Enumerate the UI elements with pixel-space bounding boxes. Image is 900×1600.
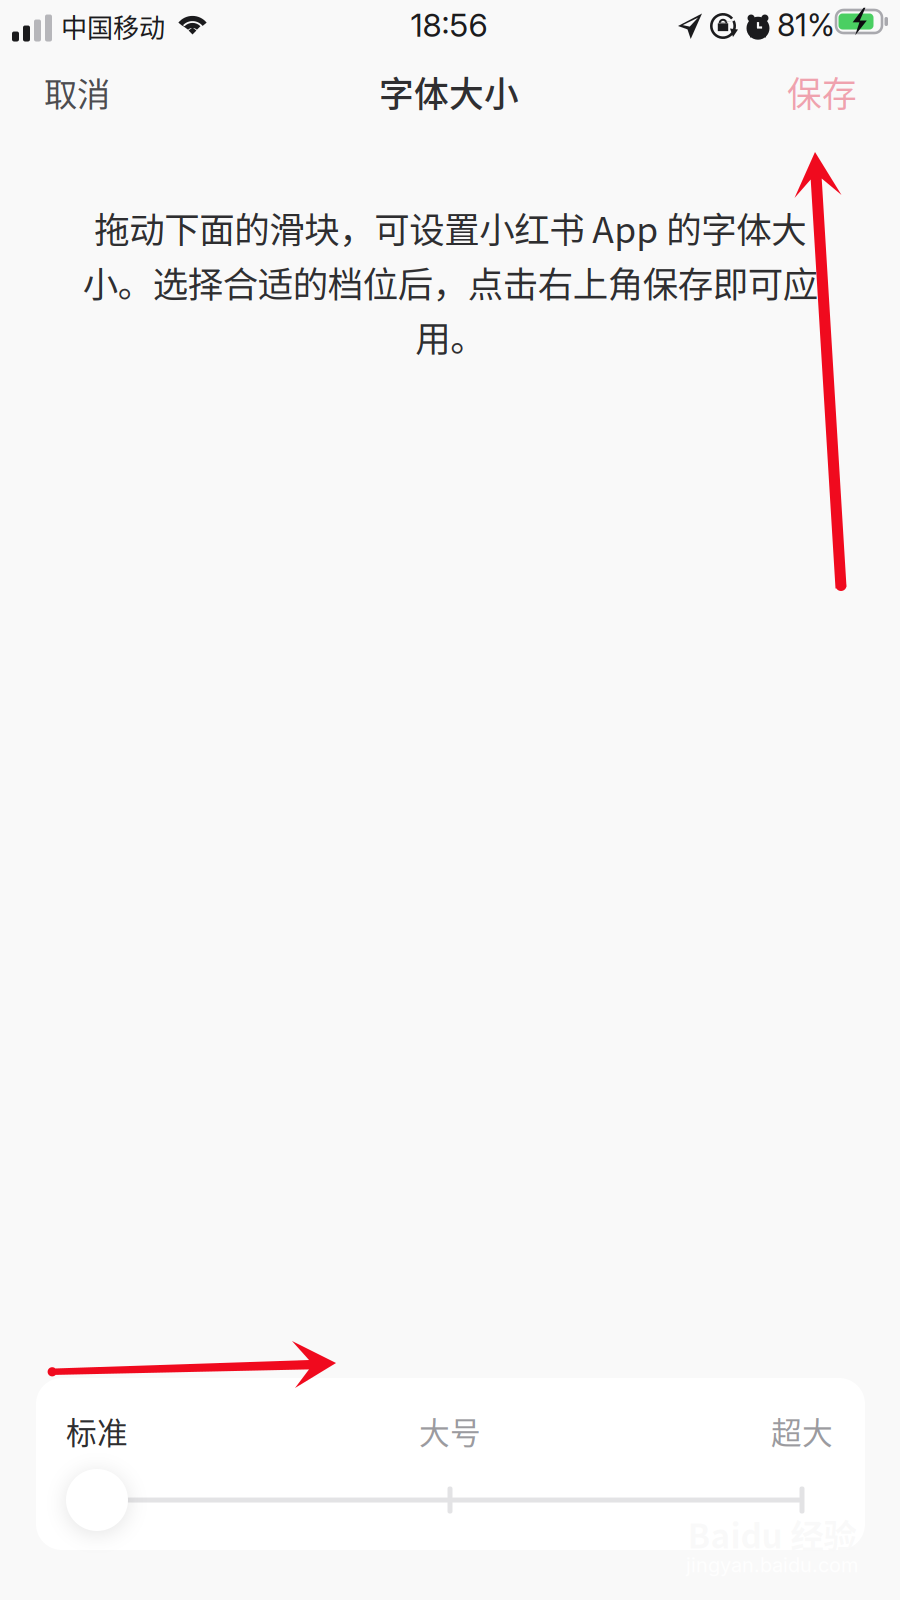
button[interactable]: 字体大小滑块 [66, 1469, 128, 1531]
staticText: 中国移动 [61, 7, 165, 45]
button[interactable]: 保存 [767, 60, 877, 124]
staticText: 字体大小 [379, 67, 519, 117]
button[interactable]: 取消 [22, 60, 132, 124]
staticText: 大号 [419, 1409, 481, 1453]
button[interactable]: 标准 [54, 1409, 140, 1453]
button[interactable]: 大号 [407, 1409, 493, 1453]
staticText: 81% [777, 6, 835, 43]
staticText: 超大 [771, 1409, 833, 1453]
staticText: 标准 [66, 1409, 128, 1453]
staticText: 拖动下面的滑块，可设置小红书 App 的字体大小。选择合适的档位后，点击右上角保… [82, 202, 817, 362]
staticText: 取消 [44, 68, 110, 116]
staticText: Baidu 经验 [687, 1510, 856, 1558]
staticText: 18:56 [410, 6, 487, 44]
staticText: 保存 [787, 67, 857, 117]
button[interactable]: 超大 [759, 1409, 845, 1453]
